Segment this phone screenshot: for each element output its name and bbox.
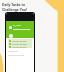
staticText: Good morning bbox=[13, 27, 31, 30]
staticText: Nothing scheduled bbox=[8, 54, 25, 56]
staticText: Morning workout bbox=[12, 43, 27, 45]
staticText: Daily Tasks to bbox=[2, 2, 26, 7]
button[interactable]: Morning workout bbox=[8, 45, 32, 48]
staticText: Challenge You! bbox=[2, 7, 27, 12]
staticText: Upcoming bbox=[8, 50, 18, 53]
staticText: Morning workout bbox=[12, 46, 27, 48]
staticText: Morning workout bbox=[12, 40, 27, 42]
button[interactable]: Morning workout bbox=[8, 42, 32, 45]
button[interactable]: Add task bbox=[9, 34, 13, 38]
staticText: Hi, Alex bbox=[13, 24, 21, 27]
button[interactable]: Morning workout bbox=[8, 39, 32, 42]
